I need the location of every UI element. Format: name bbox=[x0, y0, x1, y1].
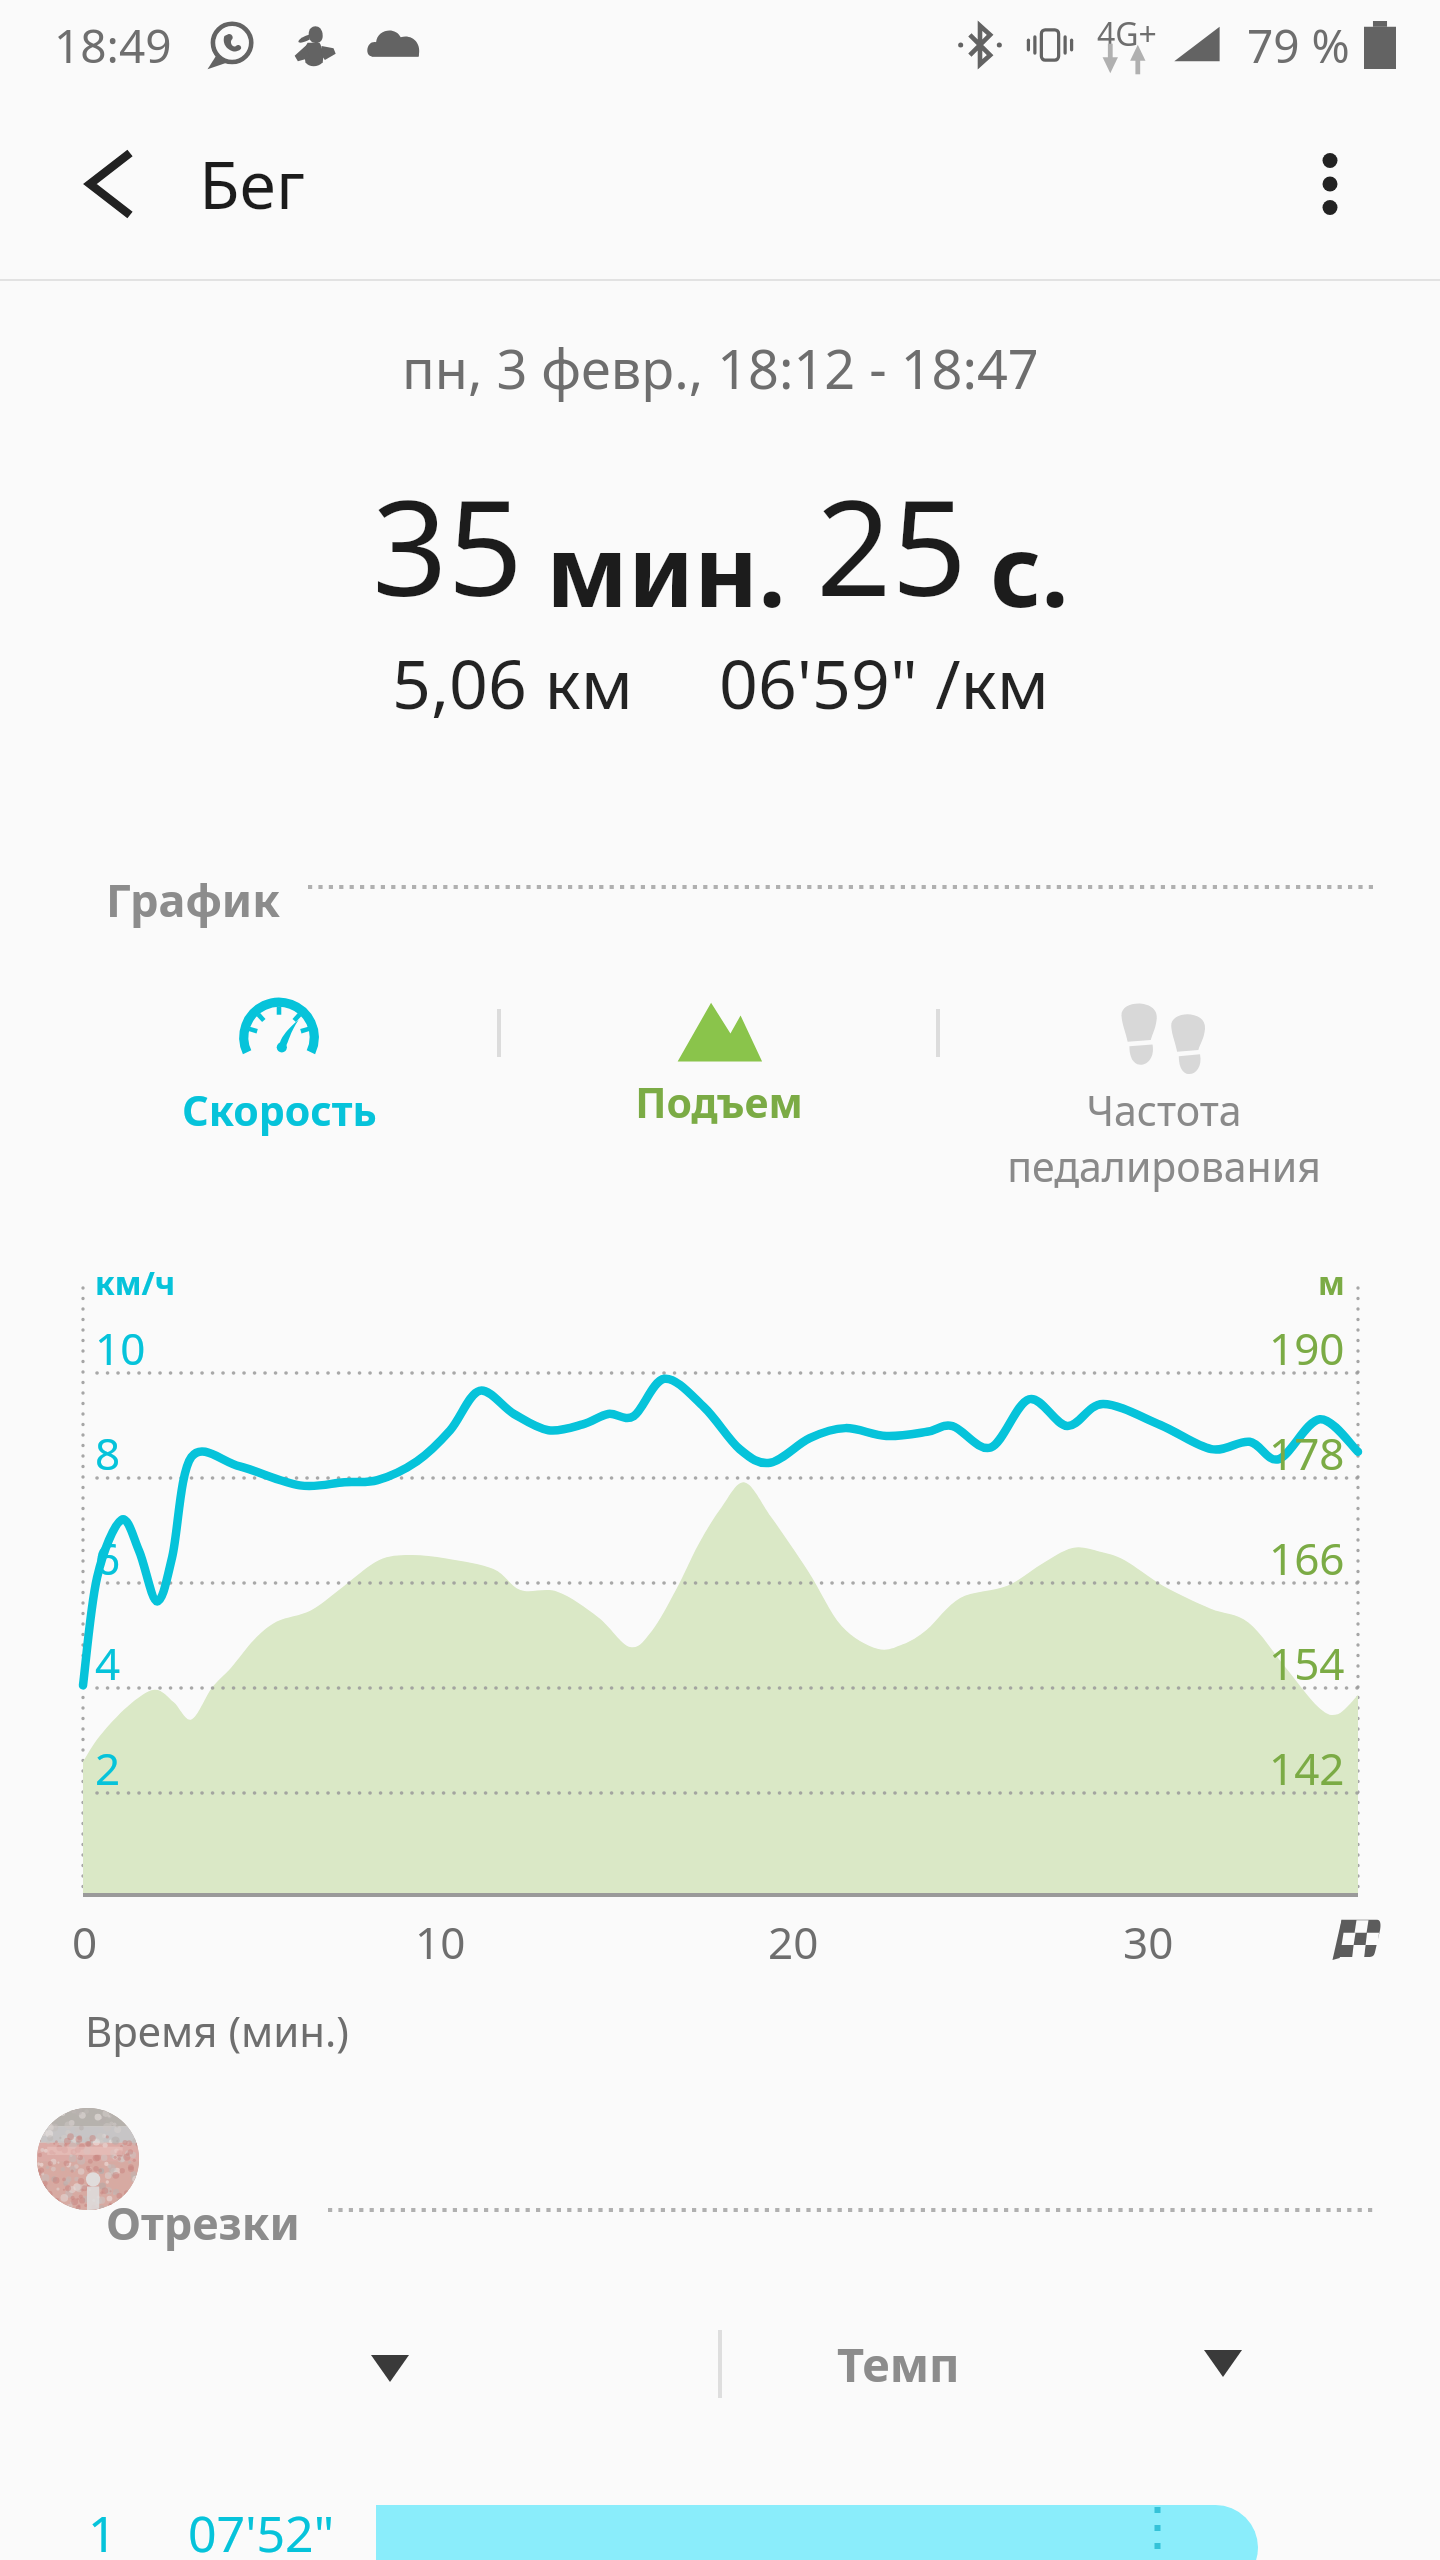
staticText: 5,06 км bbox=[392, 636, 633, 729]
button[interactable]: Скорость bbox=[60, 985, 498, 1215]
button[interactable]: Темп bbox=[760, 2310, 1320, 2426]
staticText: 154 bbox=[1269, 1633, 1345, 1693]
staticText: Подъем bbox=[635, 1074, 803, 1130]
staticText: 178 bbox=[1269, 1423, 1345, 1483]
staticText: 06'59" /км bbox=[719, 636, 1049, 729]
staticText: 166 bbox=[1269, 1528, 1345, 1588]
staticText: 0 bbox=[72, 1912, 98, 1972]
staticText: 30 bbox=[1123, 1912, 1174, 1972]
staticText: 8 bbox=[95, 1423, 121, 1483]
staticText: 79 % bbox=[1247, 14, 1350, 77]
staticText: Время (мин.) bbox=[85, 2002, 349, 2059]
button[interactable]: Подъем bbox=[502, 985, 936, 1215]
button[interactable]: 1 bbox=[0, 2475, 1440, 2560]
staticText: 18:49 bbox=[54, 14, 172, 77]
staticText: 2 bbox=[95, 1738, 121, 1798]
staticText: 1 bbox=[88, 2499, 117, 2560]
staticText: График bbox=[106, 869, 280, 930]
button[interactable]: Sort laps bbox=[280, 2310, 500, 2426]
staticText: Скорость bbox=[182, 1082, 377, 1138]
staticText: 142 bbox=[1269, 1738, 1345, 1798]
staticText: 20 bbox=[768, 1912, 819, 1972]
staticText: м bbox=[1318, 1261, 1345, 1305]
staticText: 6 bbox=[95, 1528, 121, 1588]
staticText: Бег bbox=[199, 138, 305, 228]
staticText: 07'52" bbox=[188, 2499, 335, 2560]
staticText: мин. bbox=[546, 502, 786, 635]
staticText: 10 bbox=[95, 1318, 146, 1378]
staticText: 4G+ bbox=[1097, 12, 1157, 56]
button[interactable]: Back bbox=[62, 136, 158, 232]
staticText: 190 bbox=[1269, 1318, 1345, 1378]
staticText: км/ч bbox=[95, 1261, 176, 1305]
staticText: 35 bbox=[372, 455, 524, 635]
staticText: 10 bbox=[415, 1912, 466, 1972]
staticText: Частота педалирования bbox=[1007, 1082, 1321, 1194]
staticText: 4 bbox=[95, 1633, 121, 1693]
staticText: Отрезки bbox=[106, 2192, 300, 2253]
staticText: с. bbox=[990, 502, 1069, 635]
button[interactable]: More options bbox=[1282, 136, 1378, 232]
button[interactable]: Частота педалирования bbox=[940, 985, 1388, 1215]
staticText: пн, 3 февр., 18:12 - 18:47 bbox=[402, 331, 1039, 405]
staticText: Темп bbox=[837, 2332, 960, 2396]
staticText: 25 bbox=[816, 455, 968, 635]
